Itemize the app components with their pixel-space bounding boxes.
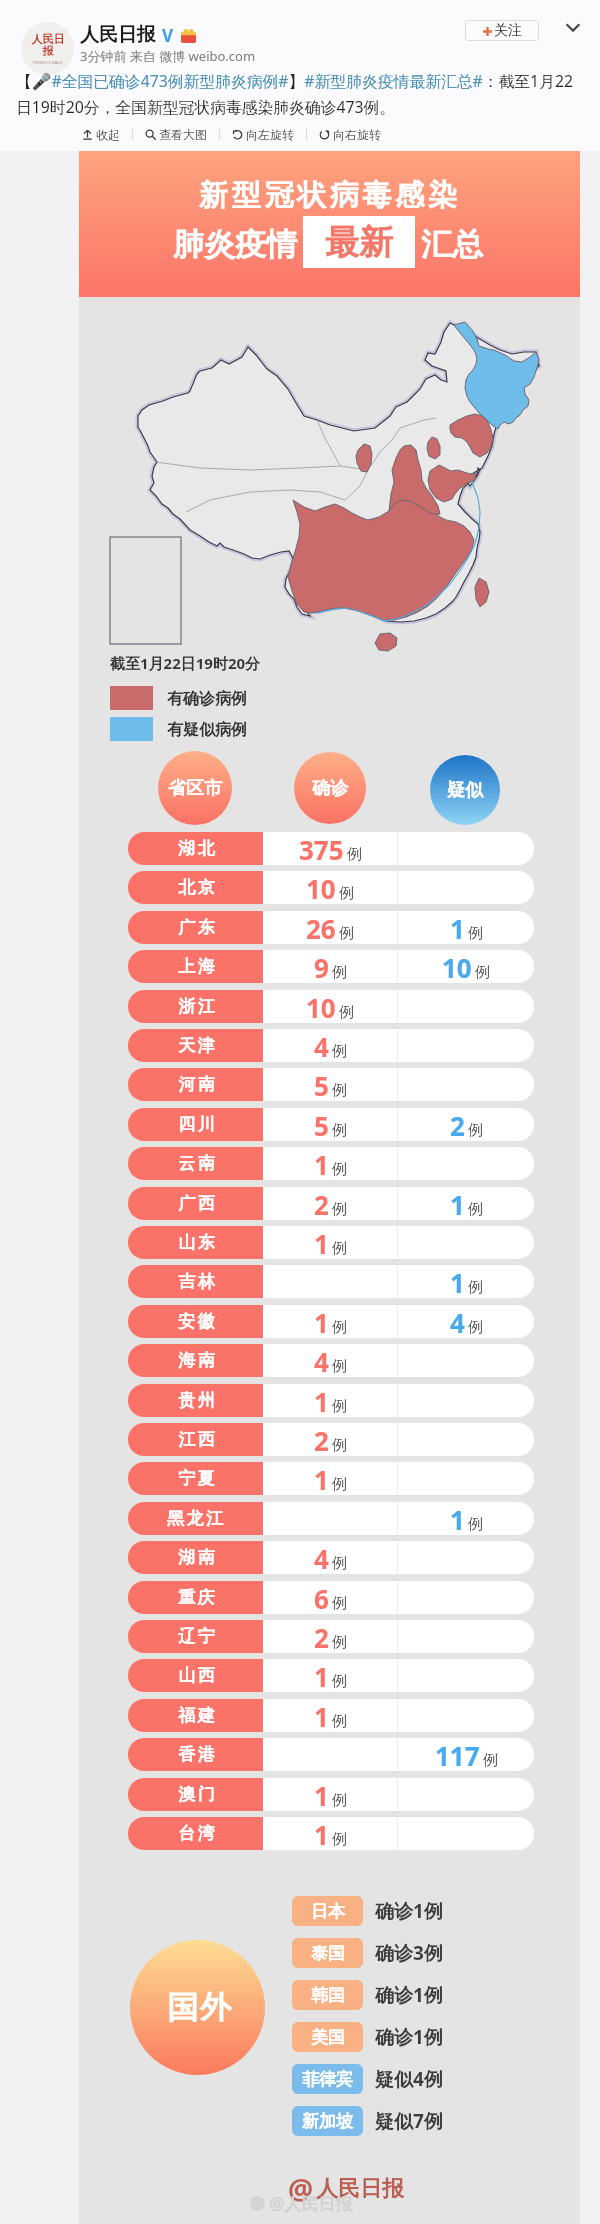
button[interactable]: 泰国	[292, 1938, 443, 1968]
staticText: 辽宁	[177, 1626, 216, 1647]
staticText: 例	[332, 1594, 347, 1613]
staticText: 2	[314, 1423, 329, 1456]
button[interactable]: 查看大图	[139, 124, 213, 145]
staticText: 【🎤#全国已确诊473例新型肺炎病例#】#新型肺炎疫情最新汇总#：截至1月22日…	[16, 70, 586, 117]
button[interactable]: 宁夏	[128, 1462, 534, 1495]
button[interactable]: 广西	[128, 1187, 534, 1220]
button[interactable]: 北京	[128, 871, 534, 904]
staticText: PEOPLE'S DAILY	[33, 60, 63, 65]
button[interactable]: 四川	[128, 1108, 534, 1141]
staticText: 10	[442, 950, 472, 983]
button[interactable]: 湖南	[128, 1541, 534, 1574]
button[interactable]: 重庆	[128, 1581, 534, 1614]
staticText: 5	[314, 1108, 329, 1141]
staticText: 2	[450, 1108, 465, 1141]
staticText: 疑似4例	[375, 2066, 443, 2092]
button[interactable]: 台湾	[128, 1817, 534, 1850]
staticText: 海南	[177, 1350, 216, 1371]
button[interactable]: 菲律宾	[292, 2064, 443, 2094]
staticText: 例	[339, 884, 354, 903]
button[interactable]: 香港	[128, 1738, 534, 1771]
staticText: 确诊3例	[375, 1940, 443, 1966]
button[interactable]: 贵州	[128, 1384, 534, 1417]
button[interactable]: 确诊	[294, 752, 366, 824]
button[interactable]: 山东	[128, 1226, 534, 1259]
staticText: 确诊1例	[375, 1898, 443, 1924]
staticText: 重庆	[177, 1587, 216, 1608]
staticText: 香港	[177, 1744, 216, 1765]
button[interactable]: 关注	[465, 20, 539, 41]
staticText: 2	[314, 1187, 329, 1220]
staticText: 云南	[177, 1153, 216, 1174]
staticText: 宁夏	[177, 1468, 216, 1489]
staticText: 10	[306, 990, 336, 1023]
button[interactable]: 更多	[560, 14, 586, 40]
staticText: 例	[468, 1278, 483, 1297]
button[interactable]: 人民日报 头像	[21, 22, 74, 75]
button[interactable]: 天津	[128, 1029, 534, 1062]
staticText: 日本	[311, 1901, 345, 1922]
staticText: @人民日报	[269, 2192, 353, 2215]
staticText: @	[288, 2170, 314, 2208]
button[interactable]: 河南	[128, 1068, 534, 1101]
button[interactable]: 疑似	[430, 755, 500, 825]
staticText: 4	[314, 1029, 329, 1062]
staticText: 1	[314, 1147, 329, 1180]
staticText: 例	[332, 1672, 347, 1691]
button[interactable]: 收起	[76, 124, 126, 145]
staticText: 台湾	[177, 1823, 216, 1844]
button[interactable]: 澳门	[128, 1778, 534, 1811]
staticText: 安徽	[177, 1311, 216, 1332]
staticText: 山东	[177, 1232, 216, 1253]
staticText: 5	[314, 1068, 329, 1101]
staticText: 国外	[166, 1988, 232, 2027]
staticText: 省区市	[168, 777, 222, 800]
staticText: V	[162, 24, 174, 47]
button[interactable]: 日本	[292, 1896, 443, 1926]
button[interactable]: 安徽	[128, 1305, 534, 1338]
button[interactable]: 向左旋转	[226, 124, 300, 145]
staticText: 确诊	[312, 777, 348, 800]
button[interactable]: 新加坡	[292, 2106, 443, 2136]
button[interactable]: 江西	[128, 1423, 534, 1456]
button[interactable]: 浙江	[128, 990, 534, 1023]
staticText: 例	[332, 1554, 347, 1573]
staticText: 广东	[177, 917, 216, 938]
button[interactable]: 辽宁	[128, 1620, 534, 1653]
staticText: 福建	[177, 1705, 216, 1726]
staticText: 菲律宾	[302, 2069, 353, 2090]
button[interactable]: 山西	[128, 1659, 534, 1692]
staticText: 1	[450, 1187, 465, 1220]
button[interactable]: 广东	[128, 911, 534, 944]
staticText: 1	[450, 1502, 465, 1535]
staticText: 例	[332, 963, 347, 982]
staticText: 泰国	[311, 1943, 345, 1964]
staticText: 人民日报	[28, 32, 68, 58]
button[interactable]: 美国	[292, 2022, 443, 2052]
button[interactable]: 云南	[128, 1147, 534, 1180]
button[interactable]: 向右旋转	[313, 124, 387, 145]
staticText: 例	[332, 1160, 347, 1179]
staticText: 例	[332, 1791, 347, 1810]
button[interactable]: 黑龙江	[128, 1502, 534, 1535]
staticText: 1	[314, 1659, 329, 1692]
staticText: 向右旋转	[333, 127, 381, 142]
staticText: 上海	[177, 956, 216, 977]
staticText: 4	[450, 1305, 465, 1338]
staticText: 117	[435, 1738, 480, 1771]
button[interactable]: 吉林	[128, 1265, 534, 1298]
staticText: 关注	[494, 22, 522, 40]
staticText: 查看大图	[159, 127, 207, 142]
staticText: 4	[314, 1344, 329, 1377]
button[interactable]: 上海	[128, 950, 534, 983]
staticText: 例	[468, 1318, 483, 1337]
staticText: 黑龙江	[167, 1508, 226, 1529]
button[interactable]: 海南	[128, 1344, 534, 1377]
button[interactable]: 韩国	[292, 1980, 443, 2010]
button[interactable]: 省区市	[158, 751, 232, 825]
staticText: 例	[468, 1121, 483, 1140]
button[interactable]: 福建	[128, 1699, 534, 1732]
button[interactable]: 湖北	[128, 832, 534, 865]
staticText: 1	[314, 1305, 329, 1338]
staticText: 吉林	[177, 1271, 216, 1292]
